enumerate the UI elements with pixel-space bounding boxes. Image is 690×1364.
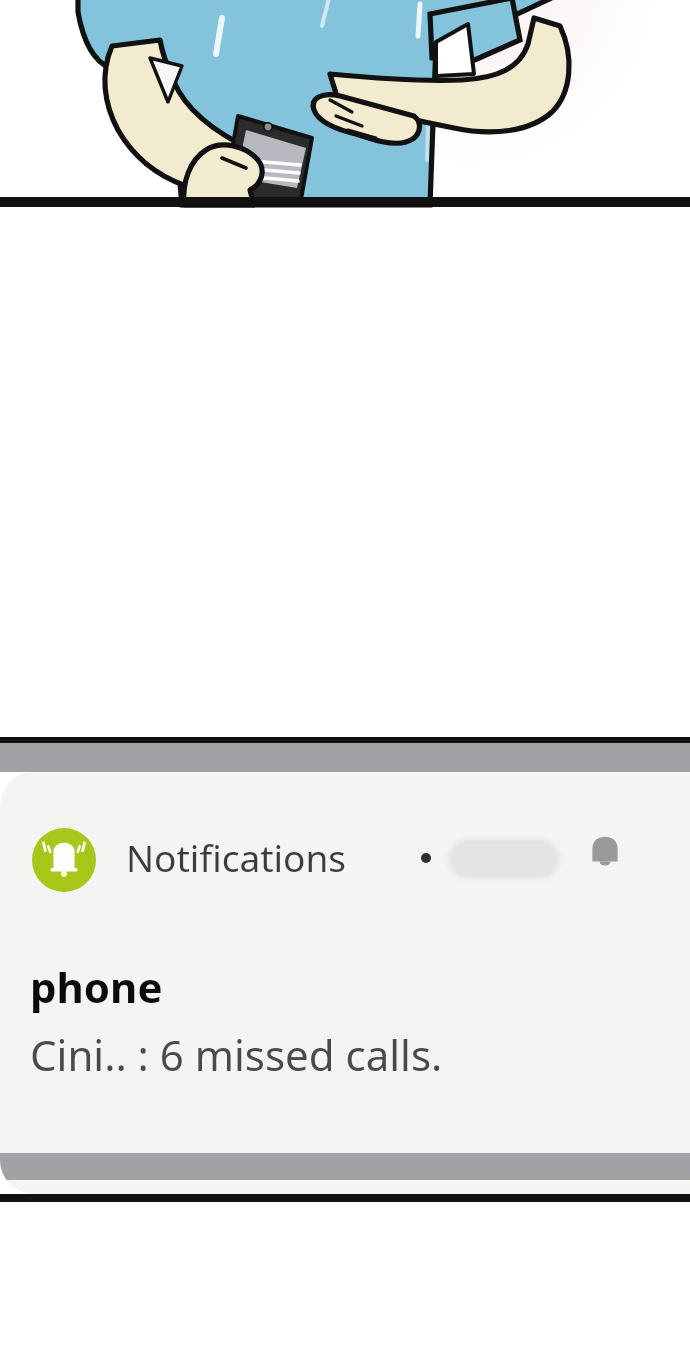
staticText: Cini.. : 6 missed calls. bbox=[30, 1026, 443, 1083]
button[interactable]: Notification settings bbox=[584, 832, 626, 874]
staticText: phone bbox=[30, 958, 163, 1015]
staticText: Notifications bbox=[126, 832, 347, 882]
button[interactable]: Notifications bbox=[0, 772, 690, 1194]
